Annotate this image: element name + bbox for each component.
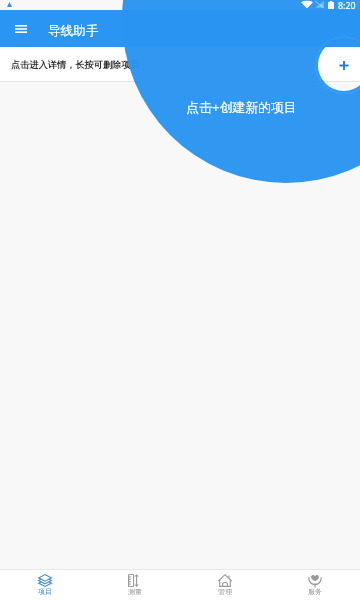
- staticText: 服务: [308, 587, 322, 596]
- button[interactable]: 管理: [180, 570, 270, 600]
- staticText: 点击进入详情，长按可删除项目: [11, 59, 140, 71]
- staticText: 8:20: [338, 0, 356, 10]
- staticText: 测量: [128, 587, 142, 596]
- staticText: 导线助手: [48, 23, 99, 39]
- staticText: 点击+创建新的项目: [186, 98, 297, 116]
- button[interactable]: Create new project: [321, 42, 360, 88]
- button[interactable]: 项目: [0, 570, 90, 600]
- button[interactable]: 服务: [270, 570, 360, 600]
- button[interactable]: 测量: [90, 570, 180, 600]
- staticText: 管理: [218, 587, 232, 596]
- staticText: 项目: [38, 587, 52, 596]
- button[interactable]: Open navigation menu: [9, 17, 33, 41]
